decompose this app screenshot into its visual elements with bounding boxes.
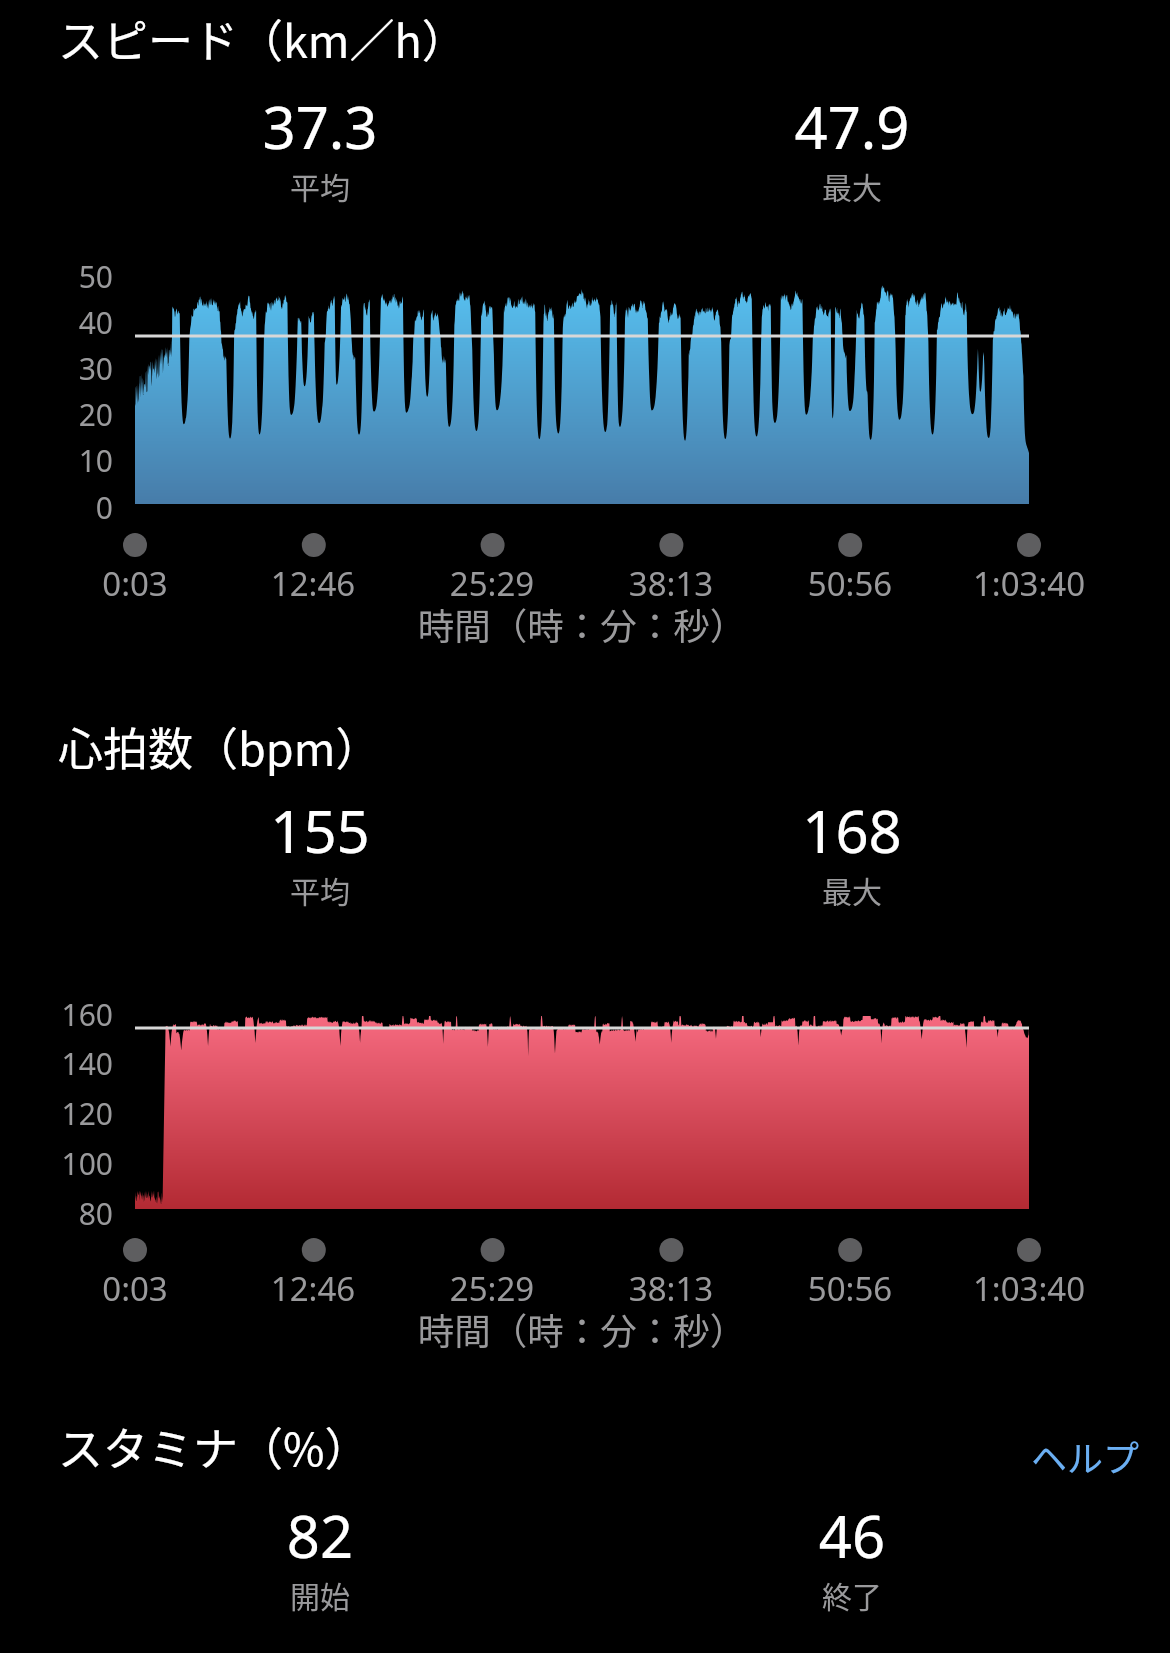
staticText: 160: [0, 994, 113, 1035]
staticText: 140: [0, 1043, 113, 1084]
staticText: 50:56: [700, 561, 1000, 606]
staticText: 時間（時：分：秒）: [332, 598, 832, 651]
staticText: 50:56: [700, 1266, 1000, 1311]
staticText: 時間（時：分：秒）: [332, 1303, 832, 1356]
staticText: 25:29: [342, 561, 642, 606]
staticText: 開始: [70, 1573, 570, 1616]
staticText: 10: [0, 440, 113, 481]
staticText: 38:13: [521, 561, 821, 606]
staticText: 0:03: [0, 561, 285, 606]
staticText: 25:29: [342, 1266, 642, 1311]
staticText: 82: [70, 1496, 570, 1575]
button[interactable]: ヘルプ: [1031, 1430, 1140, 1482]
staticText: 80: [0, 1193, 113, 1234]
staticText: 平均: [70, 868, 570, 911]
staticText: 40: [0, 302, 113, 343]
staticText: 最大: [602, 164, 1102, 207]
staticText: 1:03:40: [879, 561, 1170, 606]
staticText: 46: [602, 1496, 1102, 1575]
staticText: 47.9: [602, 87, 1102, 166]
staticText: 120: [0, 1093, 113, 1134]
staticText: 30: [0, 348, 113, 389]
staticText: 38:13: [521, 1266, 821, 1311]
staticText: 平均: [70, 164, 570, 207]
staticText: 168: [602, 791, 1102, 870]
staticText: 最大: [602, 868, 1102, 911]
staticText: 0: [0, 487, 113, 528]
staticText: 1:03:40: [879, 1266, 1170, 1311]
staticText: 20: [0, 394, 113, 435]
button[interactable]: スピードグラフ: [0, 0, 1170, 660]
button[interactable]: スタミナ: [0, 1390, 1170, 1653]
staticText: 心拍数（bpm）: [58, 714, 381, 779]
staticText: 0:03: [0, 1266, 285, 1311]
staticText: 37.3: [70, 87, 570, 166]
staticText: スピード（km／h）: [58, 6, 467, 71]
staticText: 155: [70, 791, 570, 870]
staticText: 12:46: [163, 1266, 463, 1311]
staticText: 50: [0, 256, 113, 297]
staticText: ヘルプ: [1031, 1430, 1140, 1482]
staticText: 12:46: [163, 561, 463, 606]
staticText: 終了: [602, 1573, 1102, 1616]
staticText: スタミナ（%）: [58, 1414, 370, 1479]
button[interactable]: 心拍数グラフ: [0, 690, 1170, 1360]
staticText: 100: [0, 1143, 113, 1184]
